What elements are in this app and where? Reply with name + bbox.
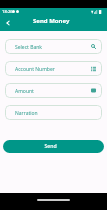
button[interactable]: Narration (5, 105, 102, 120)
staticText: Narration (15, 110, 38, 117)
staticText: Send (44, 142, 57, 149)
button[interactable]: Send (3, 140, 104, 153)
button[interactable]: Select Bank (5, 39, 102, 54)
staticText: Account Number (15, 66, 55, 73)
button[interactable]: Amount (5, 83, 102, 98)
staticText: Send Money (33, 17, 70, 25)
staticText: 18:26 (2, 9, 13, 14)
button[interactable]: Back (2, 17, 13, 28)
button[interactable]: Account Number (5, 61, 102, 76)
staticText: Select Bank (15, 44, 42, 51)
staticText: Amount (15, 88, 34, 95)
